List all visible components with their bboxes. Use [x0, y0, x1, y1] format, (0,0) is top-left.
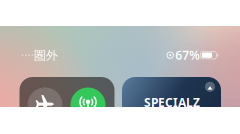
staticText: 67% [175, 47, 200, 63]
button[interactable]: Airplane Mode [27, 87, 62, 122]
staticText: 圏外 [34, 48, 58, 63]
button[interactable]: Cellular Data [70, 87, 105, 122]
button[interactable]: AirPlay [204, 81, 215, 92]
staticText: SPECIALZ [144, 94, 200, 110]
